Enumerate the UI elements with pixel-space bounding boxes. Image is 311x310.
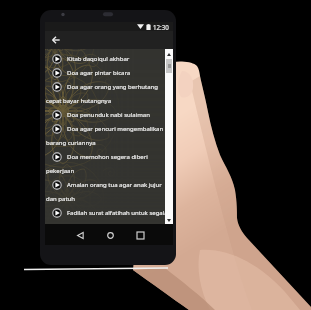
button[interactable]: Home xyxy=(102,227,118,243)
staticText: Kitab daqoiqul akhbar xyxy=(67,55,130,63)
staticText: Fadilah surat alfatihah untuk segala xyxy=(67,209,168,217)
staticText: Doa memohon segera diberi xyxy=(67,153,148,161)
staticText: Amalan orang tua agar anak jujur xyxy=(67,181,162,189)
button[interactable]: Fadilah surat alfatihah untuk segala xyxy=(45,206,173,220)
staticText: pekerjaan xyxy=(46,167,75,175)
button[interactable]: Scroll bar xyxy=(165,49,173,224)
button[interactable]: Doa agar pintar bicara xyxy=(45,66,173,80)
staticText: Doa agar pencuri mengembalikan xyxy=(67,125,164,133)
staticText: Doa agar pintar bicara xyxy=(67,69,131,77)
button[interactable]: Doa agar pencuri mengembalikan xyxy=(45,122,173,150)
button[interactable]: Navigate up xyxy=(50,34,62,46)
button[interactable]: Doa memohon segera diberi xyxy=(45,150,173,178)
button[interactable]: Kitab daqoiqul akhbar xyxy=(45,52,173,66)
button[interactable]: Doa agar orang yang berhutang xyxy=(45,80,173,108)
staticText: dan patuh xyxy=(46,195,75,203)
staticText: Doa agar orang yang berhutang xyxy=(67,83,158,91)
staticText: 12:30 xyxy=(153,23,169,31)
staticText: cepat bayar hutangnya xyxy=(46,97,112,105)
button[interactable]: Recent apps xyxy=(132,227,148,243)
button[interactable]: Doa penunduk nabi sulaiman xyxy=(45,108,173,122)
staticText: barang curiannya xyxy=(46,139,96,147)
button[interactable]: Amalan orang tua agar anak jujur xyxy=(45,178,173,206)
button[interactable]: Back xyxy=(72,227,88,243)
staticText: Doa penunduk nabi sulaiman xyxy=(67,111,150,119)
